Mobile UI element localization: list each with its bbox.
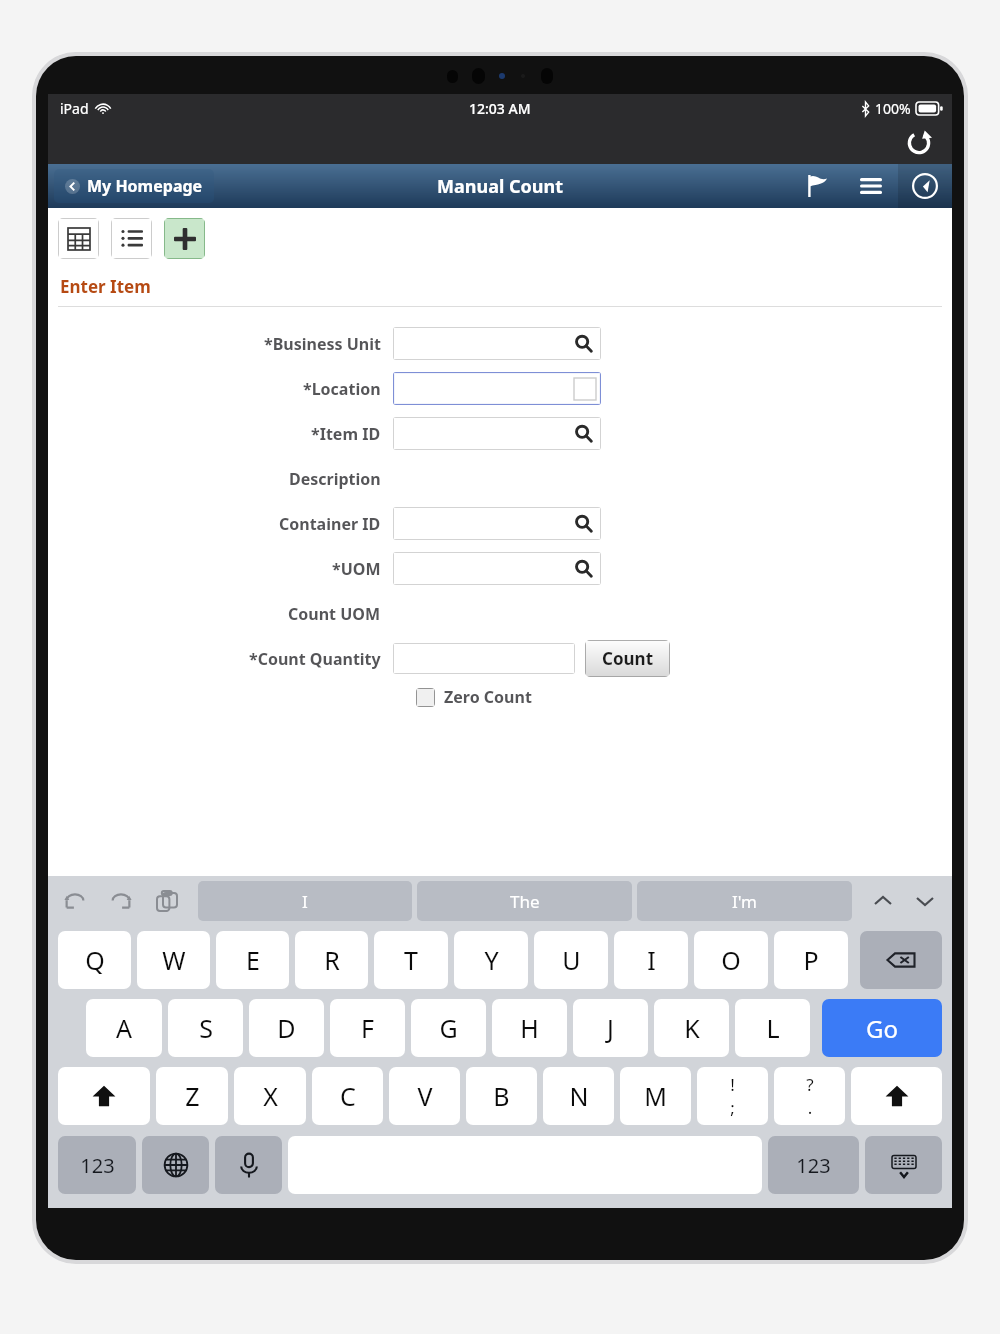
button[interactable]: F [330,999,405,1057]
button[interactable]: Menu [844,164,898,208]
staticText: Y [484,943,499,977]
staticText: *Item ID [311,423,381,445]
button[interactable]: My Homepage [54,169,214,203]
button[interactable]: ! ; [697,1067,768,1125]
button[interactable] [393,552,601,585]
button[interactable]: B [466,1067,537,1125]
button[interactable] [393,372,601,405]
button[interactable]: P [774,931,848,989]
staticText: D [277,1011,296,1045]
button[interactable]: Next field [908,884,942,918]
button[interactable]: Z [156,1067,228,1125]
staticText: The [510,890,540,913]
button[interactable]: X [234,1067,306,1125]
button[interactable] [393,643,575,674]
button[interactable]: Navigator [898,164,952,208]
button[interactable]: W [137,931,210,989]
button[interactable]: M [620,1067,691,1125]
button[interactable]: Shift [851,1067,942,1125]
button[interactable]: List view [111,218,152,259]
button[interactable]: Go [822,999,942,1057]
button[interactable]: Switch keyboard [142,1136,209,1194]
staticText: Go [866,1012,898,1045]
button[interactable]: A [86,999,162,1057]
button[interactable]: ? . [774,1067,845,1125]
button[interactable]: U [534,931,608,989]
staticText: F [361,1011,374,1045]
button[interactable]: Count [585,640,670,677]
button[interactable]: S [168,999,243,1057]
button[interactable]: Grid view [58,218,99,259]
staticText: A [116,1011,132,1045]
staticText: *UOM [332,558,381,580]
button[interactable]: 123 [768,1136,859,1194]
button[interactable]: Add [164,218,205,259]
staticText: S [199,1011,213,1045]
staticText: I [647,943,656,977]
button[interactable]: E [216,931,289,989]
button[interactable]: Paste [150,884,184,918]
staticText: ! ; [730,1073,735,1119]
staticText: J [607,1011,614,1045]
button[interactable]: L [735,999,810,1057]
button[interactable] [393,327,601,360]
button[interactable]: D [249,999,324,1057]
button[interactable]: V [389,1067,460,1125]
staticText: W [162,943,186,977]
button[interactable]: G [411,999,486,1057]
button[interactable]: H [492,999,567,1057]
staticText: O [721,943,741,977]
staticText: Manual Count [437,174,563,199]
staticText: G [439,1011,458,1045]
button[interactable]: Hide keyboard [865,1136,942,1194]
button[interactable] [393,507,601,540]
staticText: 12:03 AM [469,99,531,118]
staticText: C [340,1079,356,1113]
button[interactable]: K [654,999,729,1057]
staticText: Count [602,647,654,670]
button[interactable]: I [614,931,688,989]
staticText: K [684,1011,700,1045]
staticText: L [766,1011,780,1045]
staticText: E [246,943,260,977]
staticText: *Location [303,378,381,400]
button[interactable]: Zero Count [416,681,532,713]
staticText: T [404,943,418,977]
button[interactable]: Dictation [215,1136,282,1194]
button[interactable]: Shift [58,1067,150,1125]
staticText: N [569,1079,589,1113]
staticText: U [562,943,581,977]
staticText: P [803,943,819,977]
staticText: H [520,1011,539,1045]
button[interactable]: N [543,1067,614,1125]
button[interactable]: I'm [637,881,852,921]
button[interactable]: R [295,931,368,989]
button[interactable]: Redo [104,884,138,918]
button[interactable] [393,417,601,450]
staticText: R [324,943,340,977]
staticText: 123 [80,1152,115,1179]
button[interactable]: I [198,881,412,921]
button[interactable]: Refresh [902,126,936,160]
button[interactable]: Backspace [860,931,942,989]
button[interactable]: Y [454,931,528,989]
staticText: ? . [806,1073,814,1119]
staticText: Enter Item [60,275,151,298]
button[interactable]: The [417,881,632,921]
button[interactable]: J [573,999,648,1057]
button[interactable]: Undo [58,884,92,918]
staticText: My Homepage [87,175,203,197]
button[interactable]: T [374,931,448,989]
button[interactable]: Notifications [790,164,844,208]
button[interactable]: Q [58,931,131,989]
staticText: 123 [796,1152,831,1179]
button[interactable]: 123 [58,1136,136,1194]
button[interactable]: Previous field [866,884,900,918]
staticText: Q [85,943,105,977]
staticText: M [644,1079,667,1113]
staticText: B [493,1079,510,1113]
button[interactable]: C [312,1067,383,1125]
button[interactable]: O [694,931,768,989]
staticText: Count UOM [288,603,381,625]
